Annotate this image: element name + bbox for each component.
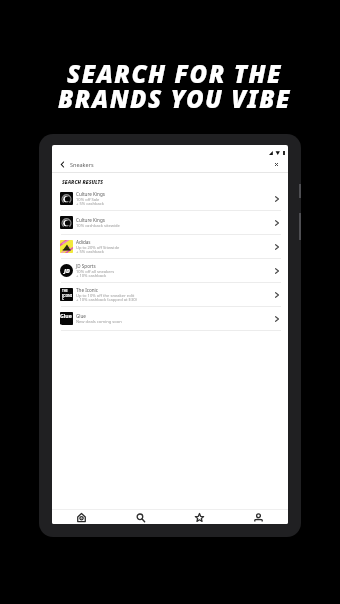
button[interactable]: Culture Kings bbox=[52, 187, 288, 211]
staticText: Glue bbox=[76, 313, 86, 319]
staticText: ICONIC bbox=[62, 293, 73, 301]
staticText: 10% off Sale + 5% cashback bbox=[76, 197, 104, 207]
staticText: Glue. bbox=[60, 312, 73, 325]
staticText: Adidas bbox=[76, 239, 91, 245]
button[interactable]: THE bbox=[52, 283, 288, 307]
button[interactable]: Back bbox=[52, 157, 288, 172]
button[interactable]: Home bbox=[52, 510, 111, 524]
staticText: New deals coming soon bbox=[76, 319, 122, 325]
staticText: Culture Kings bbox=[76, 217, 105, 223]
staticText: 10% off all sneakers + 10% cashback bbox=[76, 269, 115, 279]
staticText: JD bbox=[64, 267, 70, 275]
staticText: Up to 10% off the sneaker edit + 10% cas… bbox=[76, 293, 137, 303]
staticText: SEARCH FOR THE BRANDS YOU VIBE bbox=[58, 57, 291, 115]
button[interactable]: Clear search bbox=[272, 160, 281, 169]
button[interactable]: Adidas bbox=[52, 235, 288, 259]
staticText: THE bbox=[62, 289, 68, 293]
other: Back bbox=[59, 161, 66, 168]
staticText: Sneakers bbox=[70, 161, 94, 168]
button[interactable]: JD bbox=[52, 259, 288, 283]
staticText: Up to 20% off Sitewide + 5% cashback bbox=[76, 245, 120, 255]
staticText: The Iconic bbox=[76, 287, 98, 293]
staticText: JD Sports bbox=[76, 263, 96, 269]
button[interactable]: Search bbox=[111, 510, 170, 524]
button[interactable]: Favourites bbox=[170, 510, 229, 524]
staticText: 10% cashback sitewide bbox=[76, 223, 120, 229]
button[interactable]: Glue. bbox=[52, 307, 288, 331]
staticText: Culture Kings bbox=[76, 191, 105, 197]
staticText: SEARCH RESULTS bbox=[62, 179, 104, 186]
button[interactable]: Culture Kings bbox=[52, 211, 288, 235]
button[interactable]: Profile bbox=[229, 510, 288, 524]
